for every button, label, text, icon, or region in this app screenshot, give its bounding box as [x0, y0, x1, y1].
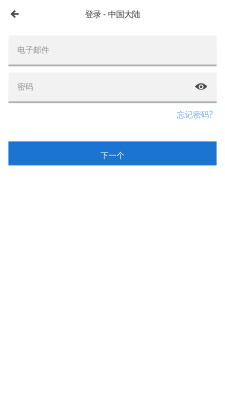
staticText: 忘记密码? [177, 109, 212, 120]
button[interactable]: Back [3, 2, 25, 26]
staticText: 电子邮件 [17, 45, 49, 55]
button[interactable]: 下一个 [8, 141, 217, 165]
staticText: 密码 [17, 82, 33, 92]
staticText: 下一个 [100, 151, 124, 161]
staticText: 登录 - 中国大陆 [85, 8, 140, 20]
button[interactable]: Show password [193, 77, 209, 97]
button[interactable]: 忘记密码? [177, 109, 212, 120]
